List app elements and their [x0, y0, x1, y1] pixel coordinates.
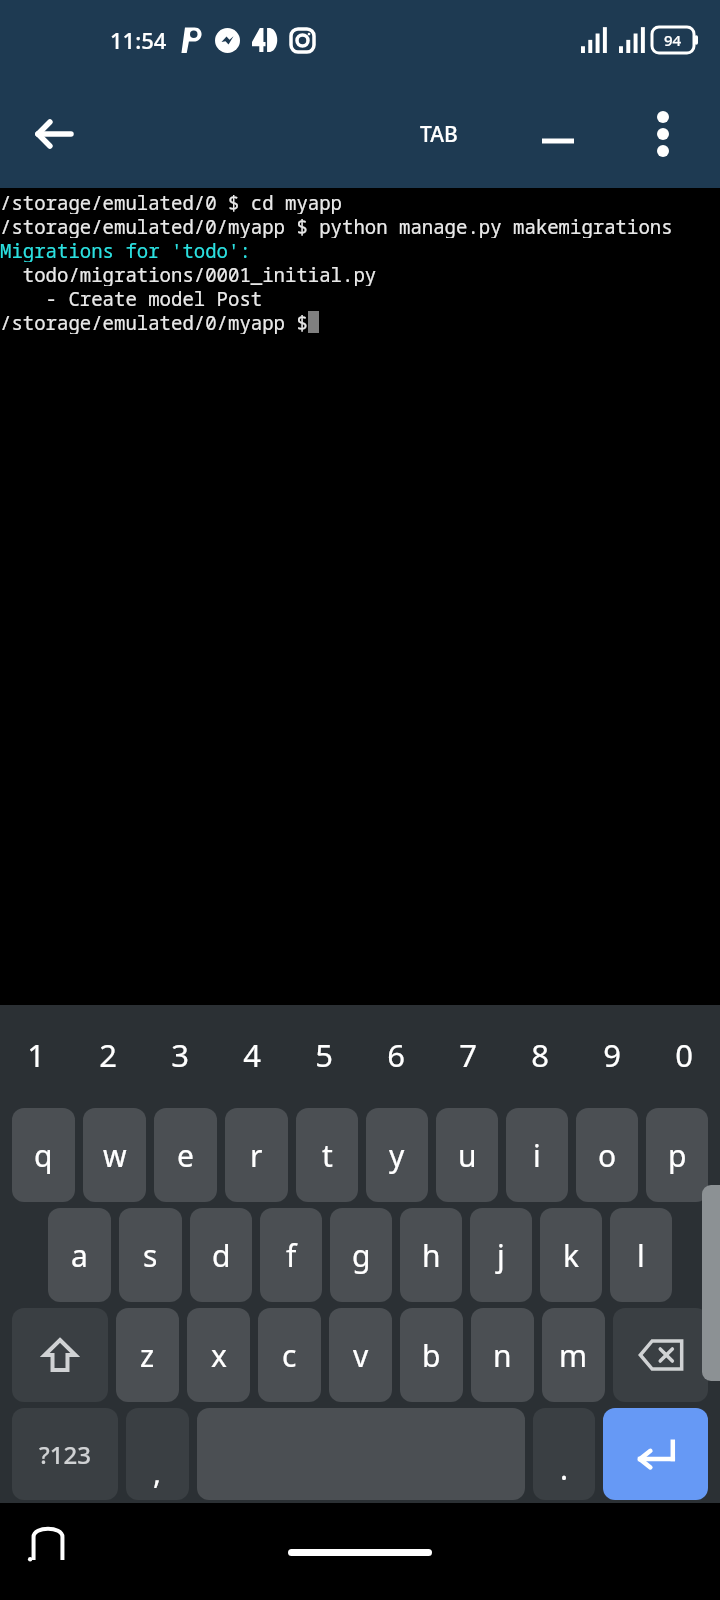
- button[interactable]: 2: [72, 1005, 144, 1105]
- button[interactable]: More options: [622, 80, 704, 188]
- staticText: o: [598, 1135, 617, 1176]
- staticText: ,: [153, 1452, 162, 1493]
- button[interactable]: q: [12, 1108, 75, 1202]
- staticText: r: [250, 1135, 263, 1176]
- staticText: j: [497, 1235, 505, 1276]
- staticText: todo/migrations/0001_initial.py: [0, 262, 377, 286]
- staticText: .: [560, 1448, 569, 1489]
- button[interactable]: 5: [288, 1005, 360, 1105]
- staticText: ?123: [39, 1438, 91, 1471]
- staticText: 11:54: [110, 25, 167, 55]
- button[interactable]: r: [225, 1108, 288, 1202]
- button[interactable]: 4: [216, 1005, 288, 1105]
- staticText: a: [71, 1235, 88, 1276]
- button[interactable]: x: [187, 1308, 250, 1402]
- staticText: y: [389, 1135, 405, 1176]
- button[interactable]: TAB: [402, 80, 476, 188]
- staticText: e: [177, 1135, 194, 1176]
- button[interactable]: Backspace: [613, 1308, 708, 1402]
- button[interactable]: ?123: [12, 1408, 118, 1500]
- button[interactable]: c: [258, 1308, 321, 1402]
- button[interactable]: y: [366, 1108, 428, 1202]
- button[interactable]: Shift: [12, 1308, 108, 1402]
- button[interactable]: Hide keyboard: [14, 1509, 82, 1577]
- button[interactable]: u: [436, 1108, 498, 1202]
- button[interactable]: z: [116, 1308, 179, 1402]
- button[interactable]: t: [296, 1108, 358, 1202]
- staticText: - Create model Post: [0, 286, 263, 310]
- button[interactable]: Minimize: [520, 80, 596, 188]
- button[interactable]: 7: [432, 1005, 504, 1105]
- button[interactable]: w: [83, 1108, 146, 1202]
- staticText: x: [211, 1335, 227, 1376]
- button[interactable]: Home: [288, 1549, 432, 1556]
- staticText: f: [286, 1235, 297, 1276]
- button[interactable]: .: [533, 1408, 595, 1500]
- staticText: 8: [531, 1034, 549, 1076]
- staticText: p: [668, 1135, 687, 1176]
- button[interactable]: k: [540, 1208, 602, 1302]
- staticText: c: [282, 1335, 297, 1376]
- staticText: TAB: [420, 120, 458, 149]
- staticText: n: [493, 1335, 512, 1376]
- staticText: 2: [99, 1034, 117, 1076]
- button[interactable]: h: [400, 1208, 462, 1302]
- staticText: /storage/emulated/0 $ cd myapp: [0, 190, 343, 214]
- button[interactable]: i: [506, 1108, 568, 1202]
- button[interactable]: 0: [648, 1005, 720, 1105]
- staticText: 0: [675, 1034, 693, 1076]
- button[interactable]: f: [260, 1208, 322, 1302]
- button[interactable]: o: [576, 1108, 638, 1202]
- staticText: l: [637, 1235, 645, 1276]
- button[interactable]: g: [330, 1208, 392, 1302]
- button[interactable]: 8: [504, 1005, 576, 1105]
- staticText: 3: [171, 1034, 189, 1076]
- staticText: 7: [459, 1034, 477, 1076]
- staticText: /storage/emulated/0/myapp $ python manag…: [0, 214, 673, 238]
- button[interactable]: e: [154, 1108, 217, 1202]
- staticText: h: [422, 1235, 441, 1276]
- button[interactable]: 3: [144, 1005, 216, 1105]
- button[interactable]: ,: [126, 1408, 189, 1500]
- staticText: d: [212, 1235, 231, 1276]
- button[interactable]: 6: [360, 1005, 432, 1105]
- staticText: b: [422, 1335, 441, 1376]
- staticText: Migrations for 'todo':: [0, 238, 251, 262]
- staticText: 6: [387, 1034, 405, 1076]
- staticText: u: [458, 1135, 477, 1176]
- button[interactable]: s: [119, 1208, 182, 1302]
- button[interactable]: l: [610, 1208, 672, 1302]
- button[interactable]: n: [471, 1308, 534, 1402]
- button[interactable]: 1: [0, 1005, 72, 1105]
- staticText: m: [559, 1335, 588, 1376]
- button[interactable]: 9: [576, 1005, 648, 1105]
- staticText: z: [140, 1335, 155, 1376]
- staticText: 4: [243, 1034, 261, 1076]
- button[interactable]: Enter: [603, 1408, 708, 1500]
- staticText: q: [34, 1135, 53, 1176]
- staticText: s: [143, 1235, 158, 1276]
- staticText: /storage/emulated/0/myapp $: [0, 310, 320, 334]
- staticText: w: [103, 1135, 127, 1176]
- button[interactable]: a: [48, 1208, 111, 1302]
- staticText: 5: [315, 1034, 333, 1076]
- button[interactable]: v: [329, 1308, 392, 1402]
- button[interactable]: d: [190, 1208, 252, 1302]
- button[interactable]: p: [646, 1108, 708, 1202]
- button[interactable]: Back: [0, 80, 108, 188]
- staticText: g: [352, 1235, 371, 1276]
- button[interactable]: j: [470, 1208, 532, 1302]
- staticText: k: [563, 1235, 580, 1276]
- staticText: 94: [664, 30, 682, 50]
- button[interactable]: b: [400, 1308, 463, 1402]
- button[interactable]: m: [542, 1308, 605, 1402]
- staticText: t: [322, 1135, 333, 1176]
- staticText: 1: [27, 1034, 45, 1076]
- button[interactable]: /storage/emulated/0 $ cd myapp: [0, 188, 720, 1005]
- staticText: 9: [603, 1034, 621, 1076]
- staticText: i: [533, 1135, 541, 1176]
- staticText: v: [353, 1335, 369, 1376]
